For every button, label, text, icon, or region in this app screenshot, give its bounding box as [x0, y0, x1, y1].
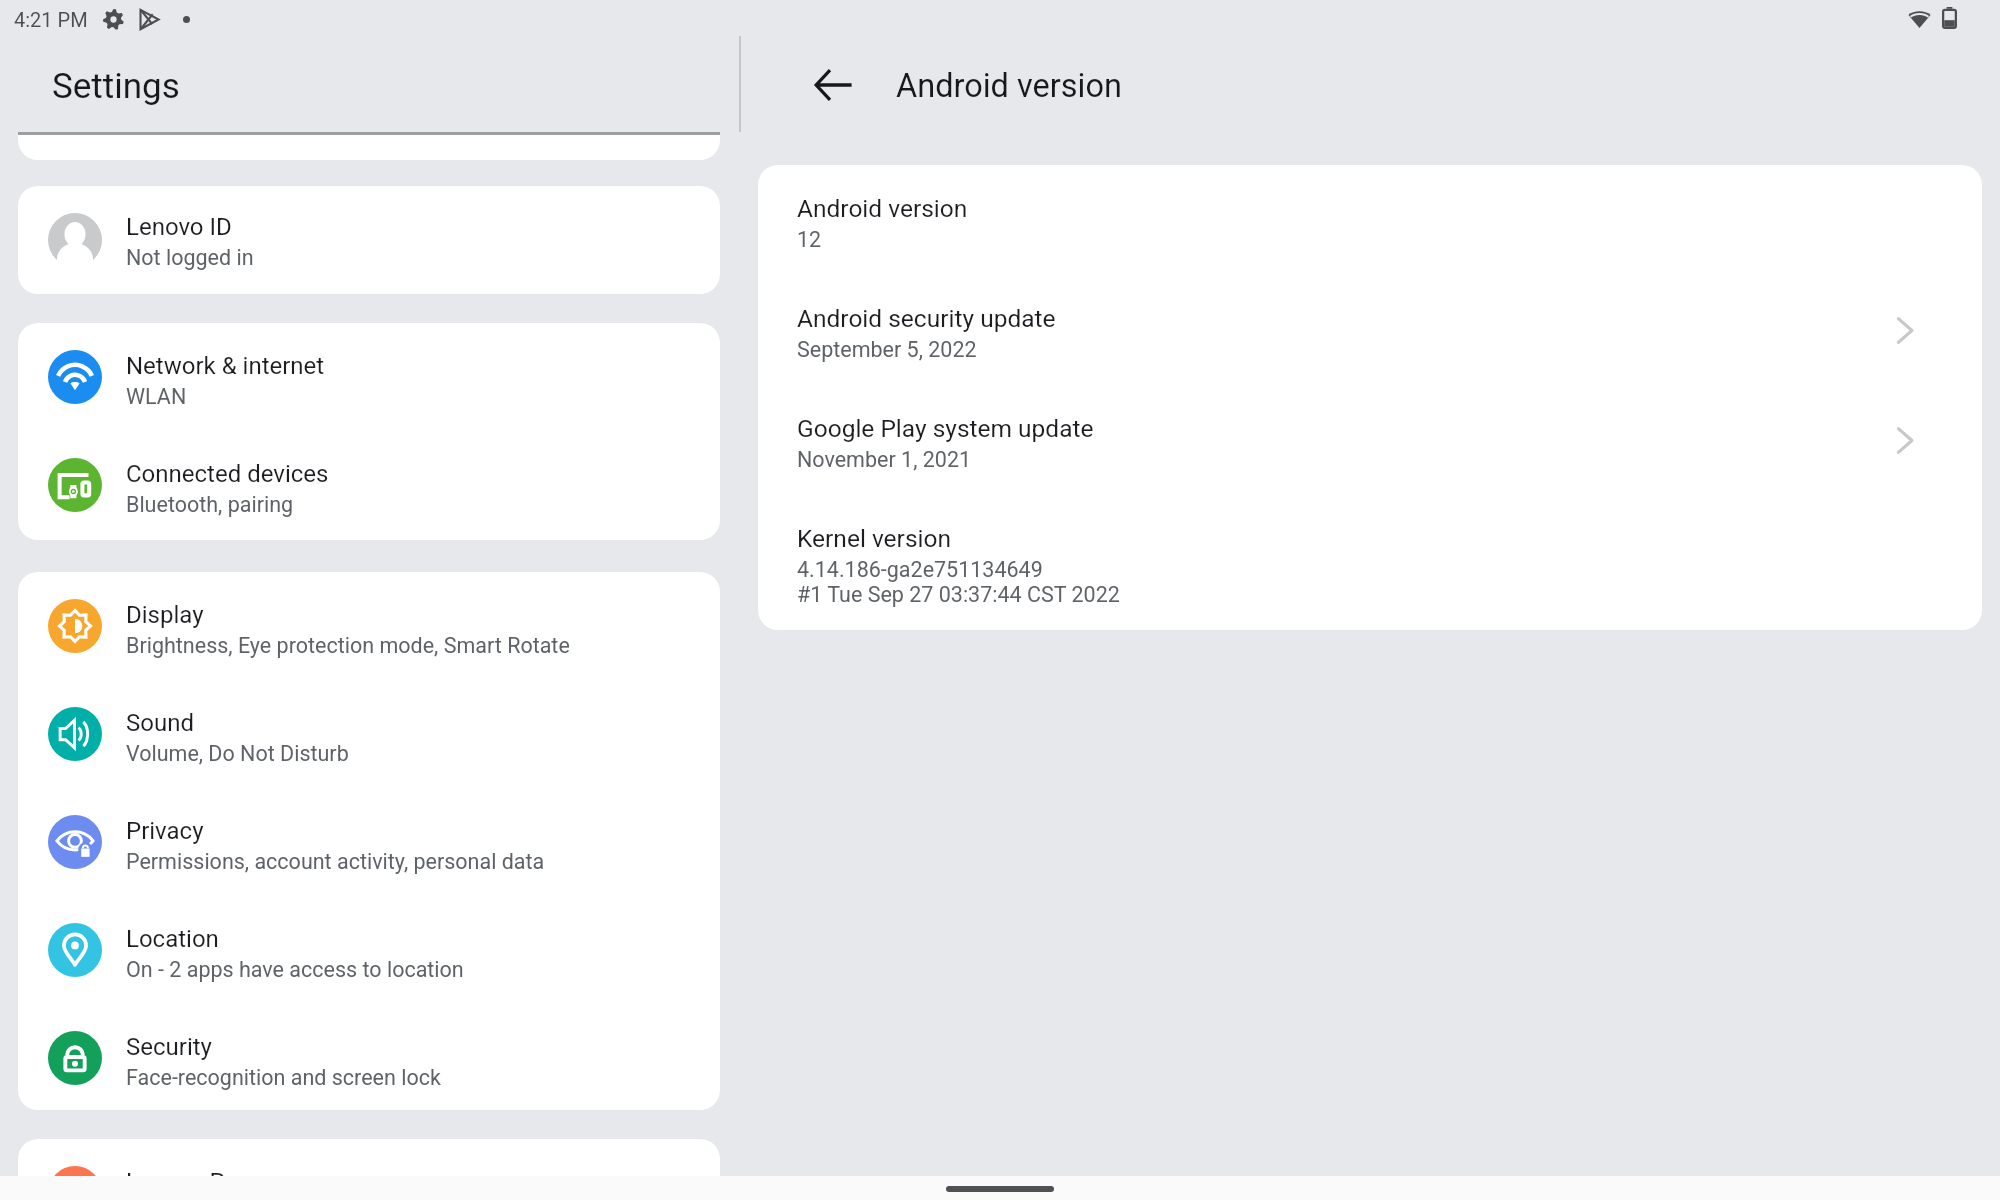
button[interactable]: Connected devices	[18, 431, 720, 539]
staticText: Kernel version	[797, 524, 952, 553]
staticText: Privacy	[126, 817, 204, 845]
button[interactable]: Android security update	[758, 275, 1982, 385]
button[interactable]: Lenovo Pen	[18, 1139, 720, 1200]
staticText: Brightness, Eye protection mode, Smart R…	[126, 633, 570, 658]
staticText: September 5, 2022	[797, 337, 977, 362]
staticText: Lenovo Pen	[126, 1168, 251, 1196]
button[interactable]: Lenovo ID	[18, 186, 720, 294]
button[interactable]: Google Play system update	[758, 385, 1982, 495]
staticText: Display	[126, 601, 204, 629]
staticText: Volume, Do Not Disturb	[126, 741, 349, 766]
staticText: Bluetooth, pairing	[126, 492, 294, 517]
staticText: Security	[126, 1033, 212, 1061]
staticText: Face-recognition and screen lock	[126, 1065, 441, 1090]
staticText: Android security update	[797, 304, 1056, 333]
staticText: Network & internet	[126, 352, 325, 380]
button[interactable]: Location	[18, 896, 720, 1004]
staticText: November 1, 2021	[797, 447, 972, 472]
button[interactable]: Privacy	[18, 788, 720, 896]
other: More notifications	[183, 16, 190, 23]
other: Open	[1887, 424, 1920, 457]
other: Settings notification	[103, 9, 124, 30]
button[interactable]: Kernel version	[758, 495, 1982, 605]
button[interactable]: Display	[18, 572, 720, 680]
button[interactable]: Android version	[758, 165, 1982, 275]
staticText: Settings	[52, 66, 180, 107]
staticText: Location	[126, 925, 219, 953]
staticText: Android version	[896, 67, 1122, 105]
staticText: Google Play system update	[797, 414, 1094, 443]
other: Battery	[1942, 7, 1957, 29]
staticText: Permissions, account activity, personal …	[126, 849, 545, 874]
other: Wi-Fi	[1908, 8, 1931, 29]
staticText: #1 Tue Sep 27 03:37:44 CST 2022	[797, 582, 1120, 607]
staticText: Sound	[126, 709, 194, 737]
button[interactable]: Network & internet	[18, 323, 720, 431]
staticText: Connected devices	[126, 460, 329, 488]
staticText: 12	[797, 227, 822, 252]
other: Open	[1887, 314, 1920, 347]
button[interactable]: Security	[18, 1004, 720, 1110]
staticText: WLAN	[126, 384, 187, 409]
staticText: Lenovo ID	[126, 213, 232, 241]
other: Google Play notification	[138, 9, 159, 30]
button[interactable]: Sound	[18, 680, 720, 788]
button[interactable]: Back	[810, 61, 858, 109]
staticText: On - 2 apps have access to location	[126, 957, 464, 982]
staticText: Not logged in	[126, 245, 254, 270]
staticText: Android version	[797, 194, 968, 223]
staticText: 4:21 PM	[14, 8, 88, 31]
staticText: 4.14.186-ga2e751134649	[797, 557, 1043, 582]
